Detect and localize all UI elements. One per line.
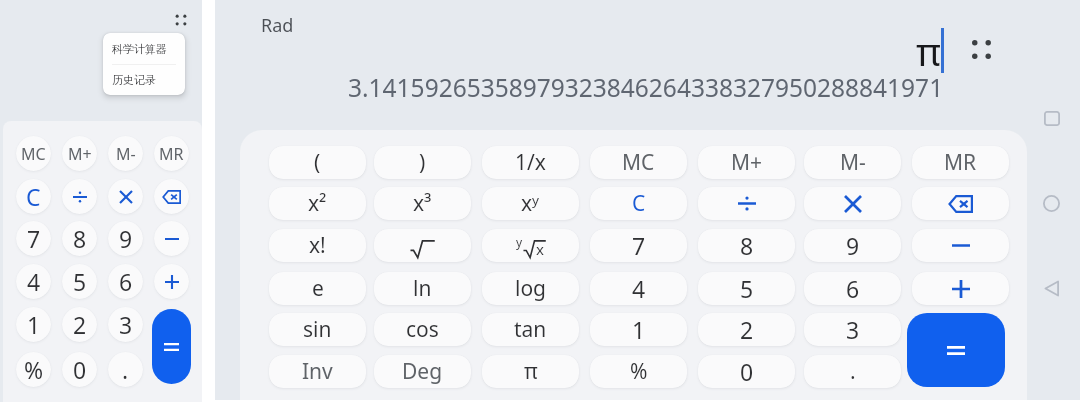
- staticText: (: [314, 148, 321, 177]
- button[interactable]: [698, 187, 795, 220]
- staticText: 5: [740, 273, 754, 304]
- button[interactable]: x!: [269, 229, 366, 262]
- button[interactable]: MC: [590, 146, 687, 179]
- button[interactable]: 2: [62, 307, 97, 342]
- button[interactable]: %: [16, 352, 51, 387]
- button[interactable]: [912, 187, 1009, 220]
- staticText: 历史记录: [112, 73, 156, 87]
- button[interactable]: 7: [590, 229, 687, 262]
- button[interactable]: M-: [804, 146, 901, 179]
- staticText: Deg: [402, 357, 443, 386]
- button[interactable]: 2: [698, 313, 795, 346]
- button[interactable]: 6: [804, 272, 901, 305]
- button[interactable]: 1/x: [482, 146, 579, 179]
- button[interactable]: More options: [965, 33, 997, 65]
- button[interactable]: %: [590, 355, 687, 388]
- button[interactable]: 4: [16, 264, 51, 299]
- staticText: 6: [119, 266, 133, 297]
- button[interactable]: 5: [62, 264, 97, 299]
- staticText: 8: [73, 223, 87, 254]
- button[interactable]: [108, 179, 143, 214]
- button[interactable]: [62, 179, 97, 214]
- button[interactable]: y: [482, 229, 579, 262]
- button[interactable]: (: [269, 146, 366, 179]
- button[interactable]: 历史记录: [103, 65, 185, 95]
- button[interactable]: Recents: [1037, 104, 1066, 133]
- button[interactable]: sin: [269, 313, 366, 346]
- button[interactable]: 6: [108, 264, 143, 299]
- button[interactable]: 8: [698, 229, 795, 262]
- button[interactable]: Back: [1037, 274, 1066, 303]
- staticText: 科学计算器: [112, 42, 167, 56]
- button[interactable]: 1: [590, 313, 687, 346]
- staticText: x!: [309, 231, 326, 260]
- button[interactable]: MR: [912, 146, 1009, 179]
- button[interactable]: [912, 272, 1009, 305]
- button[interactable]: .: [804, 355, 901, 388]
- button[interactable]: 1: [16, 307, 51, 342]
- staticText: 3: [846, 314, 860, 345]
- button[interactable]: log: [482, 272, 579, 305]
- button[interactable]: 9: [108, 221, 143, 256]
- staticText: y: [516, 234, 523, 250]
- button[interactable]: Home: [1037, 189, 1066, 218]
- button[interactable]: [154, 221, 189, 256]
- button[interactable]: 7: [16, 221, 51, 256]
- staticText: x³: [413, 189, 432, 218]
- button[interactable]: xʸ: [482, 187, 579, 220]
- staticText: 3: [119, 309, 133, 340]
- button[interactable]: MC: [16, 136, 51, 171]
- staticText: 3.14159265358979323846264338327950288841…: [348, 71, 944, 104]
- button[interactable]: C: [16, 179, 51, 214]
- button[interactable]: x²: [269, 187, 366, 220]
- button[interactable]: tan: [482, 313, 579, 346]
- button[interactable]: Rad: [261, 13, 294, 38]
- button[interactable]: Inv: [269, 355, 366, 388]
- staticText: 9: [846, 230, 860, 261]
- staticText: MC: [21, 143, 46, 165]
- staticText: 9: [119, 223, 133, 254]
- button[interactable]: 科学计算器: [103, 33, 185, 64]
- button[interactable]: 9: [804, 229, 901, 262]
- button[interactable]: 5: [698, 272, 795, 305]
- staticText: log: [515, 274, 547, 303]
- button[interactable]: 4: [590, 272, 687, 305]
- button[interactable]: 3: [108, 307, 143, 342]
- button[interactable]: More options: [168, 7, 193, 32]
- button[interactable]: [804, 187, 901, 220]
- button[interactable]: e: [269, 272, 366, 305]
- button[interactable]: 0: [62, 352, 97, 387]
- button[interactable]: Equals: [907, 313, 1005, 387]
- staticText: xʸ: [521, 189, 540, 218]
- staticText: Rad: [261, 13, 294, 38]
- button[interactable]: π: [482, 355, 579, 388]
- staticText: %: [24, 354, 44, 385]
- staticText: 1: [27, 309, 41, 340]
- button[interactable]: [912, 229, 1009, 262]
- staticText: 8: [740, 230, 754, 261]
- button[interactable]: cos: [374, 313, 471, 346]
- button[interactable]: ln: [374, 272, 471, 305]
- button[interactable]: [154, 264, 189, 299]
- button[interactable]: C: [590, 187, 687, 220]
- button[interactable]: ): [374, 146, 471, 179]
- staticText: 2: [740, 314, 754, 345]
- button[interactable]: 8: [62, 221, 97, 256]
- button[interactable]: .: [108, 352, 143, 387]
- button[interactable]: 0: [698, 355, 795, 388]
- staticText: 1/x: [515, 148, 546, 177]
- button[interactable]: M+: [62, 136, 97, 171]
- button[interactable]: Equals: [152, 309, 191, 384]
- button[interactable]: x³: [374, 187, 471, 220]
- button[interactable]: M-: [108, 136, 143, 171]
- button[interactable]: [374, 229, 471, 262]
- button[interactable]: M+: [698, 146, 795, 179]
- staticText: MR: [159, 143, 184, 165]
- button[interactable]: Deg: [374, 355, 471, 388]
- button[interactable]: MR: [154, 136, 189, 171]
- staticText: cos: [406, 315, 439, 344]
- staticText: e: [312, 274, 324, 303]
- button[interactable]: 3: [804, 313, 901, 346]
- button[interactable]: [154, 179, 189, 214]
- staticText: .: [850, 357, 856, 386]
